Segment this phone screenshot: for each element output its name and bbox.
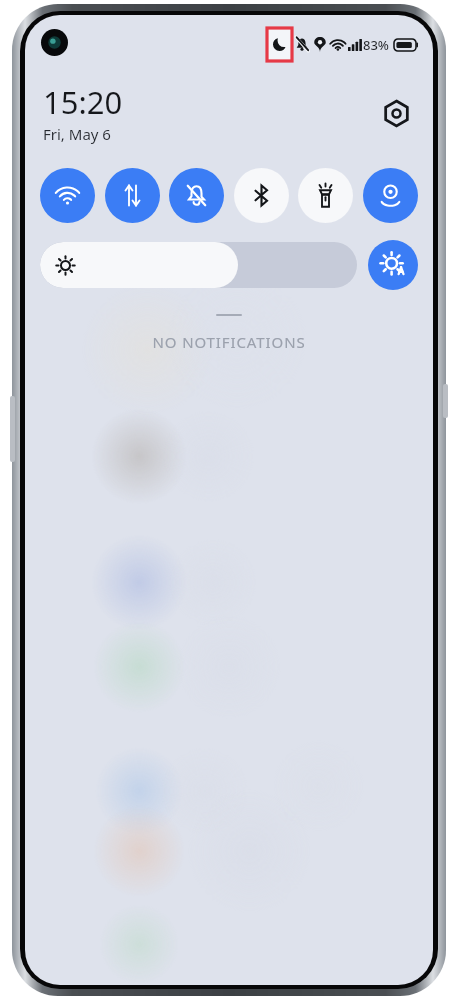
button[interactable]: Silent mode [169, 168, 224, 223]
button[interactable]: Brightness [40, 242, 357, 288]
staticText: NO NOTIFICATIONS [25, 332, 433, 352]
staticText: 15:20 [43, 81, 123, 123]
staticText: 83% [363, 36, 389, 54]
button[interactable]: Location [363, 168, 418, 223]
button[interactable]: Mobile data [105, 168, 160, 223]
button[interactable]: Flashlight [298, 168, 353, 223]
button[interactable]: Auto brightness [368, 240, 418, 290]
staticText: Fri, May 6 [43, 124, 111, 144]
button[interactable]: Wi-Fi [40, 168, 95, 223]
button[interactable]: Settings [375, 92, 417, 134]
button[interactable]: Bluetooth [234, 168, 289, 223]
